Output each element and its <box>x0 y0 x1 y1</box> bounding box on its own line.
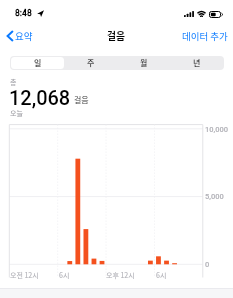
staticText: 걸음 <box>107 29 126 43</box>
button[interactable]: 일 <box>11 57 64 69</box>
button[interactable]: 년 <box>170 57 223 69</box>
staticText: 0 <box>205 260 210 269</box>
staticText: 6시 <box>59 270 70 280</box>
staticText: 10,000 <box>205 125 228 134</box>
button[interactable]: 월 <box>117 57 170 69</box>
staticText: 월 <box>140 57 148 69</box>
staticText: 6시 <box>156 270 167 280</box>
staticText: 12,068 <box>9 86 71 109</box>
staticText: 일 <box>34 57 42 69</box>
button[interactable]: 요약 <box>0 26 41 46</box>
button[interactable]: 데이터 추가 <box>174 25 233 47</box>
staticText: 요약 <box>15 29 33 43</box>
staticText: 걸음 <box>74 94 89 106</box>
staticText: 오늘 <box>10 108 23 118</box>
button[interactable]: 주 <box>64 57 117 69</box>
staticText: 5,000 <box>205 192 224 201</box>
staticText: 주 <box>87 57 95 69</box>
staticText: 오전 12시 <box>10 270 39 280</box>
staticText: 오후 12시 <box>106 270 135 280</box>
staticText: 총 <box>10 77 17 87</box>
staticText: 8:48 <box>15 8 32 18</box>
staticText: 년 <box>193 57 201 69</box>
